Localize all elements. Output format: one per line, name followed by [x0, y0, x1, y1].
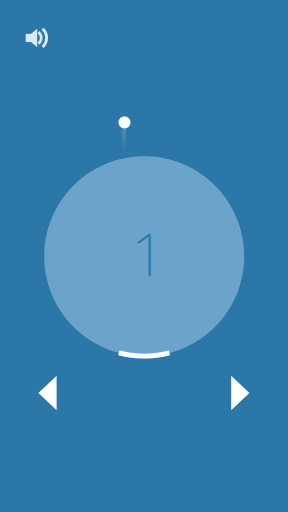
button[interactable]: Next level [216, 369, 264, 417]
button[interactable]: Previous level [23, 369, 71, 417]
button[interactable]: Toggle sound [17, 19, 57, 57]
staticText: 1 [131, 214, 164, 292]
